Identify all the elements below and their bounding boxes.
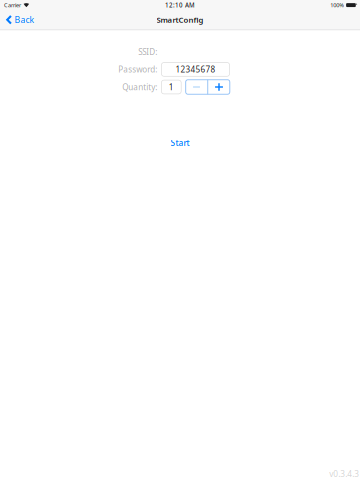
staticText: Start — [170, 137, 189, 148]
button[interactable]: Increase quantity — [208, 80, 230, 94]
staticText: SSID: — [138, 46, 157, 57]
staticText: Password: — [118, 64, 157, 75]
staticText: Quantity: — [122, 81, 157, 93]
staticText: Carrier — [4, 1, 21, 9]
staticText: 12345678 — [175, 64, 215, 75]
staticText: Back — [14, 14, 34, 26]
staticText: SmartConfig — [156, 14, 203, 25]
staticText: 100% — [330, 1, 344, 9]
staticText: v0.3.4.3 — [329, 468, 359, 479]
button[interactable]: Start — [165, 134, 194, 151]
staticText: 1 — [169, 81, 174, 93]
button[interactable]: Back — [0, 10, 41, 29]
staticText: 12:10 AM — [165, 1, 195, 9]
button[interactable]: Decrease quantity — [186, 80, 207, 94]
